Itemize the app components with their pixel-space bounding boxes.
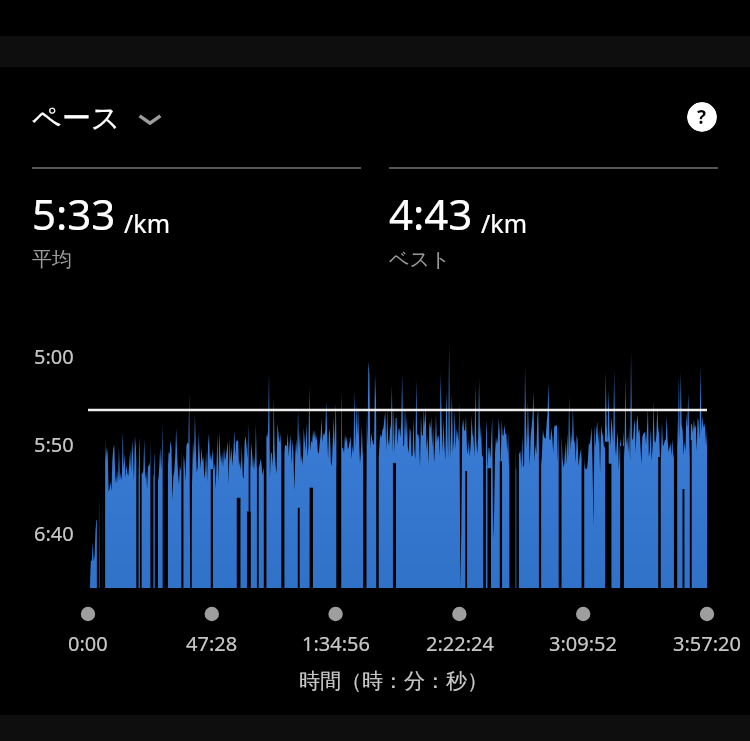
staticText: 47:28 — [186, 630, 238, 657]
staticText: 1:34:56 — [302, 630, 370, 657]
staticText: 0:00 — [68, 630, 108, 657]
button[interactable]: Help — [687, 102, 717, 132]
staticText: 5:50 — [34, 431, 74, 458]
staticText: ペース — [32, 100, 121, 137]
staticText: 5:33 — [32, 185, 116, 242]
staticText: /km — [124, 206, 171, 240]
button[interactable]: ペース — [26, 96, 169, 141]
staticText: 平均 — [32, 247, 72, 272]
staticText: 4:43 — [389, 185, 473, 242]
staticText: 時間（時：分：秒） — [299, 668, 488, 694]
staticText: 3:57:20 — [673, 630, 741, 657]
staticText: 5:00 — [34, 343, 74, 370]
staticText: ベスト — [389, 247, 451, 272]
staticText: 6:40 — [34, 520, 74, 547]
staticText: 3:09:52 — [549, 630, 617, 657]
staticText: 2:22:24 — [426, 630, 494, 657]
staticText: /km — [481, 206, 528, 240]
staticText: ? — [697, 104, 707, 130]
